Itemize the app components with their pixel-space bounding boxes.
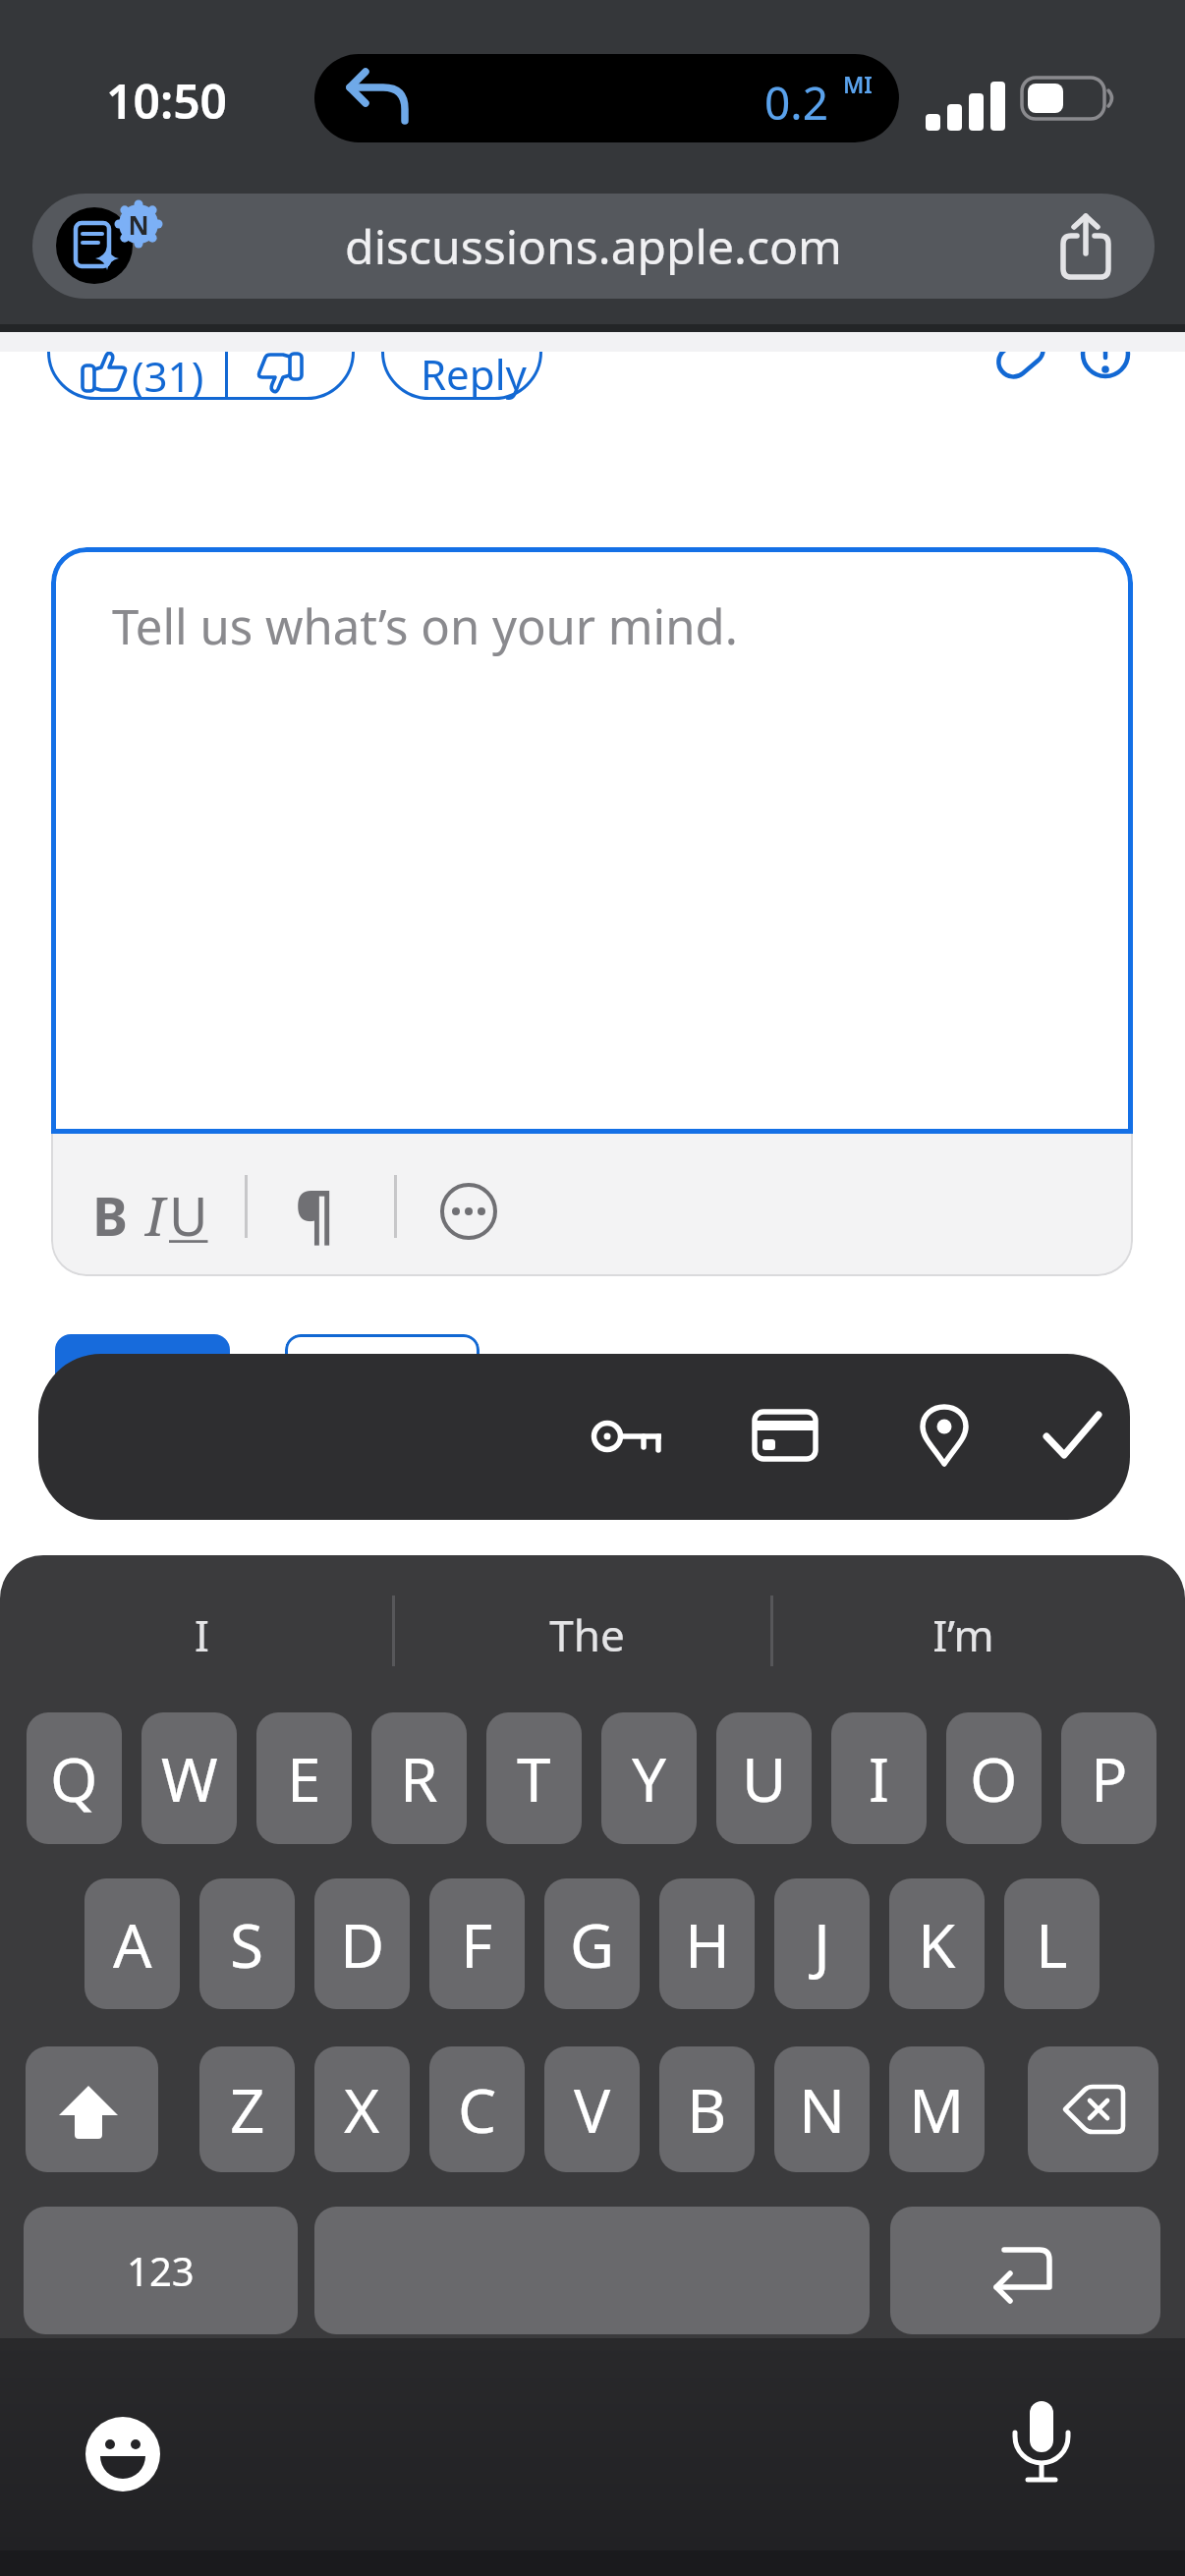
staticText: P [1091, 1737, 1128, 1820]
staticText: H [685, 1903, 730, 1986]
button[interactable]: Q [27, 1712, 122, 1844]
staticText: W [161, 1737, 218, 1820]
staticText: M [909, 2068, 965, 2151]
staticText: 10:50 [106, 69, 228, 133]
button[interactable] [1044, 1411, 1104, 1464]
staticText: R [400, 1737, 438, 1820]
staticText: Tell us what’s on your mind. [112, 593, 738, 659]
staticText: X [344, 2068, 380, 2151]
button[interactable] [314, 2207, 870, 2334]
button[interactable]: I [831, 1712, 927, 1844]
staticText: S [230, 1903, 264, 1986]
button[interactable]: C [429, 2046, 525, 2172]
staticText: F [461, 1903, 493, 1986]
button[interactable] [47, 303, 355, 400]
button[interactable] [51, 547, 1133, 1134]
staticText: L [1036, 1903, 1068, 1986]
button[interactable] [285, 1334, 480, 1393]
staticText: (31) [132, 348, 204, 404]
staticText: Y [632, 1737, 667, 1820]
staticText: 0.2 [764, 72, 828, 134]
staticText: U [742, 1737, 787, 1820]
button[interactable]: S [199, 1878, 295, 2009]
staticText: discussions.apple.com [345, 214, 842, 278]
staticText: E [287, 1737, 321, 1820]
button[interactable] [55, 1334, 230, 1393]
button[interactable]: F [429, 1878, 525, 2009]
staticText: I [869, 1737, 890, 1820]
button[interactable] [1028, 2046, 1158, 2172]
button[interactable]: W [141, 1712, 237, 1844]
button[interactable]: M [889, 2046, 985, 2172]
button[interactable]: E [256, 1712, 352, 1844]
button[interactable]: J [774, 1878, 870, 2009]
button[interactable] [919, 1405, 970, 1468]
button[interactable]: Z [199, 2046, 295, 2172]
staticText: I [145, 1179, 165, 1252]
button[interactable]: H [659, 1878, 755, 2009]
staticText: G [570, 1903, 615, 1986]
button[interactable] [381, 303, 542, 400]
button[interactable]: Y [601, 1712, 697, 1844]
button[interactable] [590, 1405, 688, 1470]
button[interactable]: A [85, 1878, 180, 2009]
button[interactable] [26, 2046, 158, 2172]
staticText: B [92, 1179, 128, 1252]
button[interactable]: U [716, 1712, 812, 1844]
button[interactable]: X [314, 2046, 410, 2172]
staticText: T [517, 1737, 551, 1820]
button[interactable]: 123 [24, 2207, 298, 2334]
button[interactable]: D [314, 1878, 410, 2009]
button[interactable] [1061, 214, 1112, 279]
button[interactable] [56, 207, 133, 284]
button[interactable]: G [544, 1878, 640, 2009]
staticText: D [340, 1903, 385, 1986]
button[interactable]: N [774, 2046, 870, 2172]
button[interactable] [890, 2207, 1160, 2334]
staticText: MI [843, 69, 873, 99]
button[interactable]: B [659, 2046, 755, 2172]
button[interactable]: L [1004, 1878, 1100, 2009]
staticText: C [458, 2068, 497, 2151]
button[interactable] [440, 1183, 497, 1240]
staticText: N [128, 207, 149, 242]
staticText: N [799, 2068, 846, 2151]
staticText: I’m [932, 1605, 994, 1660]
staticText: Q [50, 1737, 98, 1820]
staticText: A [113, 1903, 152, 1986]
button[interactable]: O [946, 1712, 1042, 1844]
button[interactable]: R [371, 1712, 467, 1844]
staticText: I [195, 1605, 209, 1660]
button[interactable]: V [544, 2046, 640, 2172]
staticText: ¶ [295, 1173, 335, 1256]
button[interactable] [752, 1409, 820, 1464]
button[interactable] [85, 2417, 160, 2492]
button[interactable]: T [486, 1712, 582, 1844]
staticText: Z [230, 2068, 265, 2151]
staticText: B [687, 2068, 727, 2151]
staticText: O [970, 1737, 1018, 1820]
staticText: V [574, 2068, 611, 2151]
button[interactable] [990, 332, 1133, 386]
button[interactable] [1007, 2399, 1076, 2501]
button[interactable]: K [889, 1878, 985, 2009]
button[interactable]: P [1061, 1712, 1157, 1844]
button[interactable] [32, 194, 1155, 299]
staticText: J [814, 1903, 830, 1986]
staticText: U [169, 1179, 208, 1252]
staticText: The [549, 1605, 625, 1660]
staticText: 123 [127, 2244, 195, 2297]
staticText: Reply [421, 346, 527, 402]
staticText: K [918, 1903, 956, 1986]
